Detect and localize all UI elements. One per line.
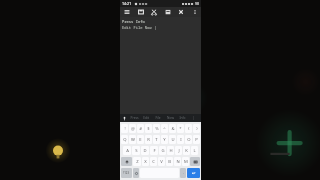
button[interactable]: !: [121, 124, 128, 133]
staticText: I: [180, 137, 182, 143]
staticText: Press Info: [122, 19, 145, 24]
button[interactable]: X: [142, 157, 149, 166]
button[interactable]: U: [169, 135, 176, 144]
button[interactable]: Paste: [162, 7, 173, 17]
staticText: W: [131, 137, 135, 143]
staticText: M: [184, 159, 188, 165]
staticText: A: [126, 148, 129, 154]
button[interactable]: Edit: [140, 114, 152, 122]
button[interactable]: %: [153, 124, 160, 133]
staticText: Z: [136, 159, 139, 165]
button[interactable]: K: [183, 146, 190, 155]
button[interactable]: Y: [161, 135, 168, 144]
staticText: Y: [163, 137, 166, 143]
button[interactable]: @: [129, 124, 136, 133]
button[interactable]: Q: [121, 135, 128, 144]
button[interactable]: #: [137, 124, 144, 133]
button[interactable]: J: [175, 146, 182, 155]
button[interactable]: F: [150, 146, 158, 155]
staticText: T: [155, 137, 158, 143]
button[interactable]: ^: [161, 124, 168, 133]
staticText: *: [179, 126, 182, 132]
staticText: ^: [163, 126, 166, 132]
button[interactable]: D: [141, 146, 149, 155]
staticText: Info: [179, 116, 186, 120]
button[interactable]: E: [137, 135, 144, 144]
staticText: #: [139, 126, 142, 132]
button[interactable]: *: [177, 124, 184, 133]
staticText: H: [169, 148, 173, 154]
button[interactable]: N: [174, 157, 181, 166]
button[interactable]: Cut: [148, 7, 159, 17]
staticText: Edit: [143, 116, 149, 120]
staticText: C: [152, 159, 155, 165]
button[interactable]: Backspace: [190, 157, 200, 166]
staticText: F: [153, 148, 156, 154]
staticText: Press: [130, 116, 139, 120]
staticText: $: [147, 126, 150, 132]
button[interactable]: (: [185, 124, 192, 133]
staticText: X: [144, 159, 147, 165]
staticText: O: [187, 137, 191, 143]
button[interactable]: Enter: [187, 168, 200, 178]
button[interactable]: ): [193, 124, 200, 133]
button[interactable]: A: [123, 146, 131, 155]
button[interactable]: O: [185, 135, 192, 144]
staticText: Now: [167, 116, 174, 120]
button[interactable]: M: [182, 157, 189, 166]
button[interactable]: .: [180, 168, 186, 178]
staticText: J: [178, 148, 180, 154]
staticText: S: [135, 148, 138, 154]
staticText: N: [176, 159, 180, 165]
button[interactable]: Close: [175, 7, 186, 17]
button[interactable]: Press Info: [120, 17, 201, 114]
staticText: &: [171, 126, 175, 132]
button[interactable]: W: [129, 135, 136, 144]
staticText: .: [183, 171, 184, 175]
button[interactable]: Emoji: [133, 168, 139, 178]
button[interactable]: R: [145, 135, 152, 144]
button[interactable]: Press: [128, 114, 140, 122]
button[interactable]: File: [152, 114, 164, 122]
button[interactable]: G: [159, 146, 166, 155]
button[interactable]: More options: [189, 7, 200, 17]
button[interactable]: Save: [135, 7, 146, 17]
button[interactable]: C: [150, 157, 157, 166]
button[interactable]: Hint: [48, 142, 68, 162]
staticText: G: [161, 148, 165, 154]
staticText: ?123: [123, 171, 130, 175]
button[interactable]: Voice input: [121, 115, 128, 122]
button[interactable]: Shift: [121, 157, 132, 166]
button[interactable]: H: [167, 146, 174, 155]
button[interactable]: L: [191, 146, 198, 155]
button[interactable]: Menu: [121, 7, 132, 17]
staticText: @: [131, 126, 135, 132]
staticText: 98: [195, 1, 199, 6]
staticText: ): [196, 126, 198, 132]
button[interactable]: $: [145, 124, 152, 133]
button[interactable]: B: [166, 157, 173, 166]
button[interactable]: Now: [164, 114, 176, 122]
button[interactable]: Z: [133, 157, 141, 166]
staticText: R: [147, 137, 150, 143]
staticText: B: [168, 159, 171, 165]
staticText: !: [124, 126, 126, 132]
staticText: L: [193, 148, 196, 154]
staticText: K: [185, 148, 188, 154]
staticText: V: [160, 159, 163, 165]
staticText: %: [155, 126, 159, 132]
staticText: D: [143, 148, 147, 154]
button[interactable]: ?123: [121, 168, 132, 178]
button[interactable]: I: [177, 135, 184, 144]
button[interactable]: S: [132, 146, 140, 155]
button[interactable]: P: [193, 135, 200, 144]
button[interactable]: Info: [176, 114, 188, 122]
button[interactable]: V: [158, 157, 165, 166]
button[interactable]: T: [153, 135, 160, 144]
staticText: 14:21: [122, 1, 132, 6]
staticText: P: [195, 137, 198, 143]
staticText: Edit File Now |: [122, 25, 157, 30]
button[interactable]: &: [169, 124, 176, 133]
button[interactable]: |: [188, 114, 200, 122]
